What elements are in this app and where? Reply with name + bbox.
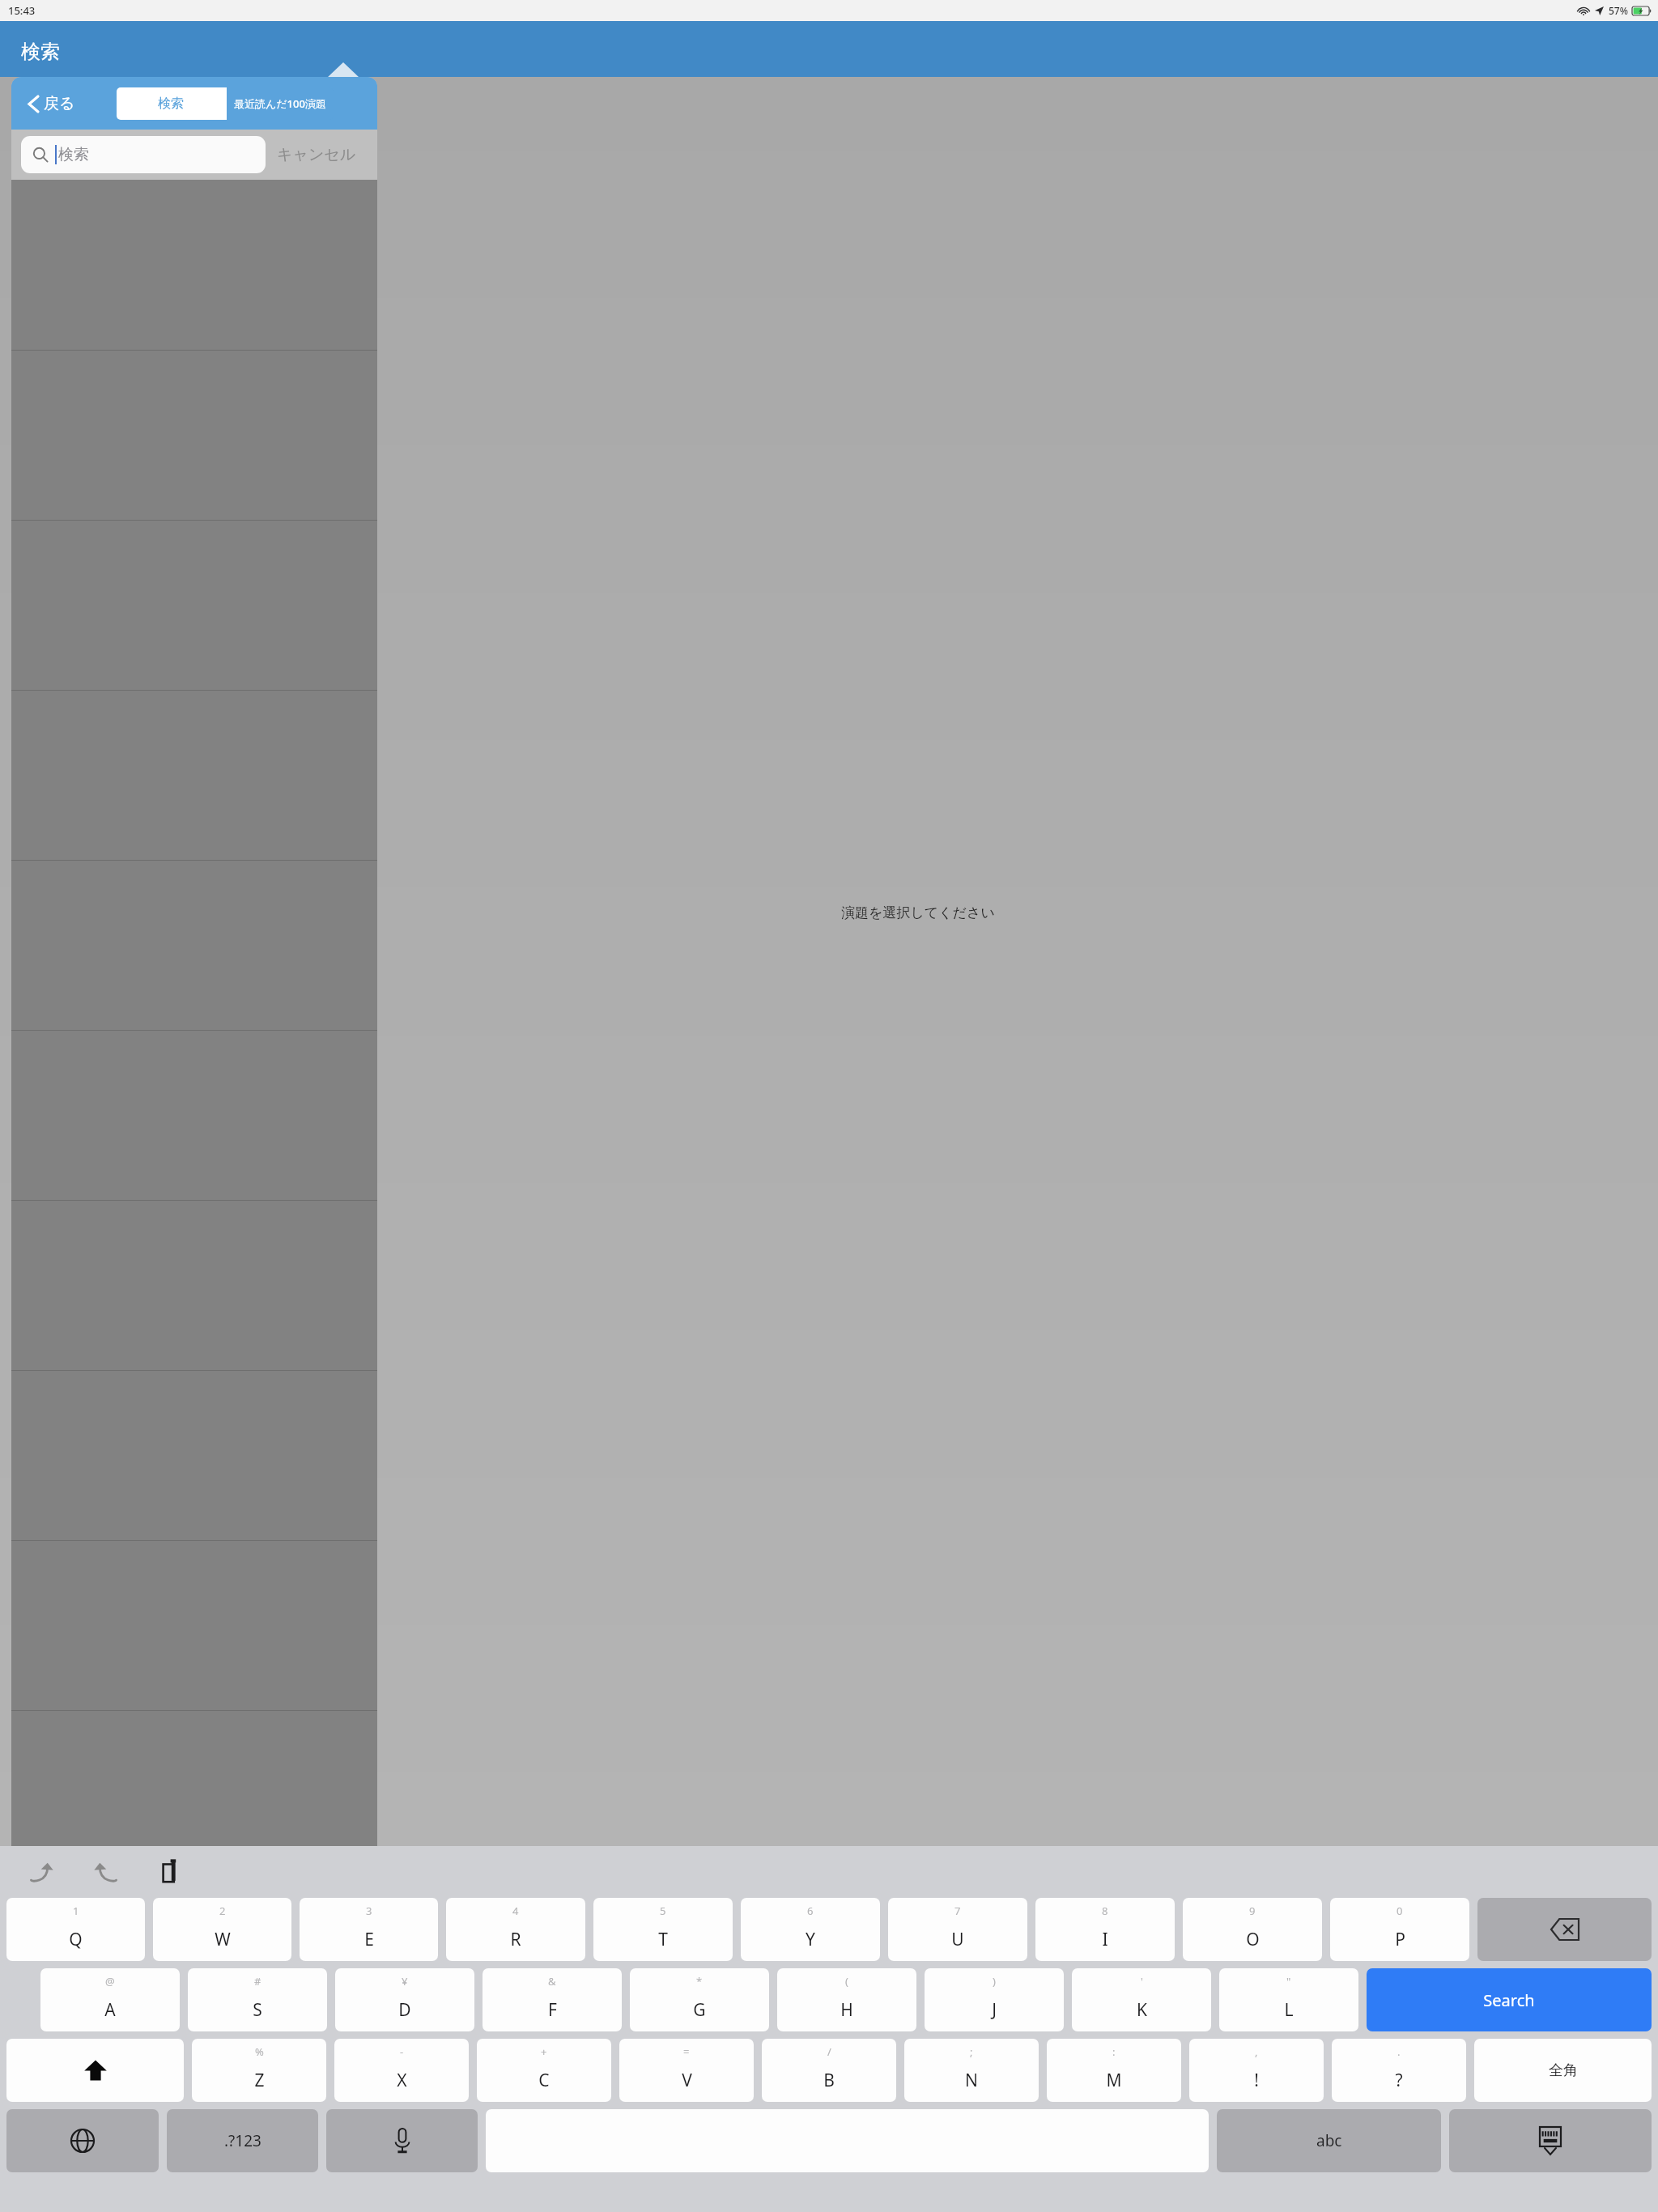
button[interactable]: + (477, 2039, 611, 2102)
button[interactable]: 0 (1330, 1898, 1469, 1961)
button[interactable]: : (1047, 2039, 1181, 2102)
staticText: 9 (1249, 1904, 1256, 1918)
button[interactable]: キャンセル (266, 138, 368, 171)
button[interactable]: / (762, 2039, 896, 2102)
button[interactable]: * (630, 1968, 769, 2031)
button[interactable]: " (1219, 1968, 1358, 2031)
staticText: T (658, 1928, 668, 1951)
button[interactable]: 戻る (29, 94, 75, 113)
button[interactable]: 3 (300, 1898, 438, 1961)
button[interactable]: & (483, 1968, 622, 2031)
staticText: F (548, 1998, 557, 2022)
staticText: ) (993, 1974, 996, 1989)
button[interactable]: 6 (741, 1898, 880, 1961)
button[interactable]: , (1189, 2039, 1324, 2102)
button[interactable]: redo (89, 1853, 126, 1891)
button[interactable]: Dictation (326, 2109, 478, 2172)
button[interactable]: 全角 (1474, 2039, 1652, 2102)
button[interactable] (11, 1711, 377, 1881)
staticText: ' (1141, 1974, 1143, 1989)
staticText: : (1112, 2044, 1116, 2059)
button[interactable]: Shift (6, 2039, 184, 2102)
staticText: V (682, 2069, 692, 2092)
button[interactable]: 2 (153, 1898, 291, 1961)
staticText: , (1255, 2044, 1258, 2059)
button[interactable]: . (1332, 2039, 1466, 2102)
staticText: - (400, 2044, 404, 2059)
staticText: 検索 (58, 145, 89, 164)
button[interactable]: 最近読んだ100演題 (227, 87, 334, 120)
staticText: H (840, 1998, 853, 2022)
staticText: E (364, 1928, 374, 1951)
staticText: O (1246, 1928, 1260, 1951)
button[interactable]: Search (1367, 1968, 1652, 2031)
staticText: 4 (512, 1904, 519, 1918)
button[interactable]: - (334, 2039, 469, 2102)
staticText: Q (69, 1928, 83, 1951)
button[interactable]: .?123 (167, 2109, 318, 2172)
staticText: 8 (1102, 1904, 1108, 1918)
button[interactable]: ( (777, 1968, 916, 2031)
button[interactable]: # (188, 1968, 327, 2031)
staticText: / (827, 2044, 831, 2059)
button[interactable]: ¥ (335, 1968, 474, 2031)
button[interactable]: 5 (593, 1898, 733, 1961)
staticText: 戻る (44, 94, 75, 113)
staticText: 3 (366, 1904, 372, 1918)
staticText: K (1137, 1998, 1147, 2022)
staticText: J (992, 1998, 997, 2022)
staticText: 0 (1397, 1904, 1403, 1918)
staticText: abc (1316, 2130, 1342, 2151)
button[interactable]: undo (21, 1853, 58, 1891)
button[interactable]: 7 (888, 1898, 1027, 1961)
staticText: Search (1483, 1989, 1535, 2011)
button[interactable] (486, 2109, 1209, 2172)
staticText: M (1106, 2069, 1122, 2092)
staticText: ? (1395, 2069, 1403, 2092)
staticText: 検索 (158, 96, 184, 112)
button[interactable]: Next keyboard (6, 2109, 159, 2172)
button[interactable]: Hide keyboard (1449, 2109, 1652, 2172)
staticText: = (683, 2044, 690, 2059)
button[interactable]: = (619, 2039, 754, 2102)
button[interactable]: 1 (6, 1898, 145, 1961)
button[interactable]: abc (1217, 2109, 1441, 2172)
staticText: ¥ (402, 1974, 408, 1989)
staticText: 全角 (1549, 2061, 1578, 2080)
staticText: " (1286, 1974, 1291, 1989)
staticText: Z (254, 2069, 265, 2092)
staticText: X (397, 2069, 407, 2092)
button[interactable]: 9 (1183, 1898, 1322, 1961)
button[interactable]: ; (904, 2039, 1039, 2102)
staticText: G (693, 1998, 706, 2022)
staticText: % (255, 2044, 264, 2059)
button[interactable]: % (192, 2039, 326, 2102)
staticText: 6 (807, 1904, 814, 1918)
staticText: W (215, 1928, 231, 1951)
staticText: A (104, 1998, 116, 2022)
button[interactable]: 検索 (117, 87, 225, 120)
staticText: S (253, 1998, 262, 2022)
staticText: I (1102, 1928, 1108, 1951)
button[interactable]: Paste (154, 1853, 191, 1891)
button[interactable]: ' (1072, 1968, 1211, 2031)
button[interactable]: Delete (1477, 1898, 1652, 1961)
button[interactable]: 検索 (21, 136, 266, 173)
button[interactable]: 4 (446, 1898, 585, 1961)
staticText: C (538, 2069, 550, 2092)
button[interactable]: ) (925, 1968, 1064, 2031)
staticText: 1 (73, 1904, 79, 1918)
button[interactable]: 8 (1035, 1898, 1175, 1961)
staticText: B (823, 2069, 835, 2092)
button[interactable]: @ (40, 1968, 180, 2031)
staticText: 5 (660, 1904, 666, 1918)
